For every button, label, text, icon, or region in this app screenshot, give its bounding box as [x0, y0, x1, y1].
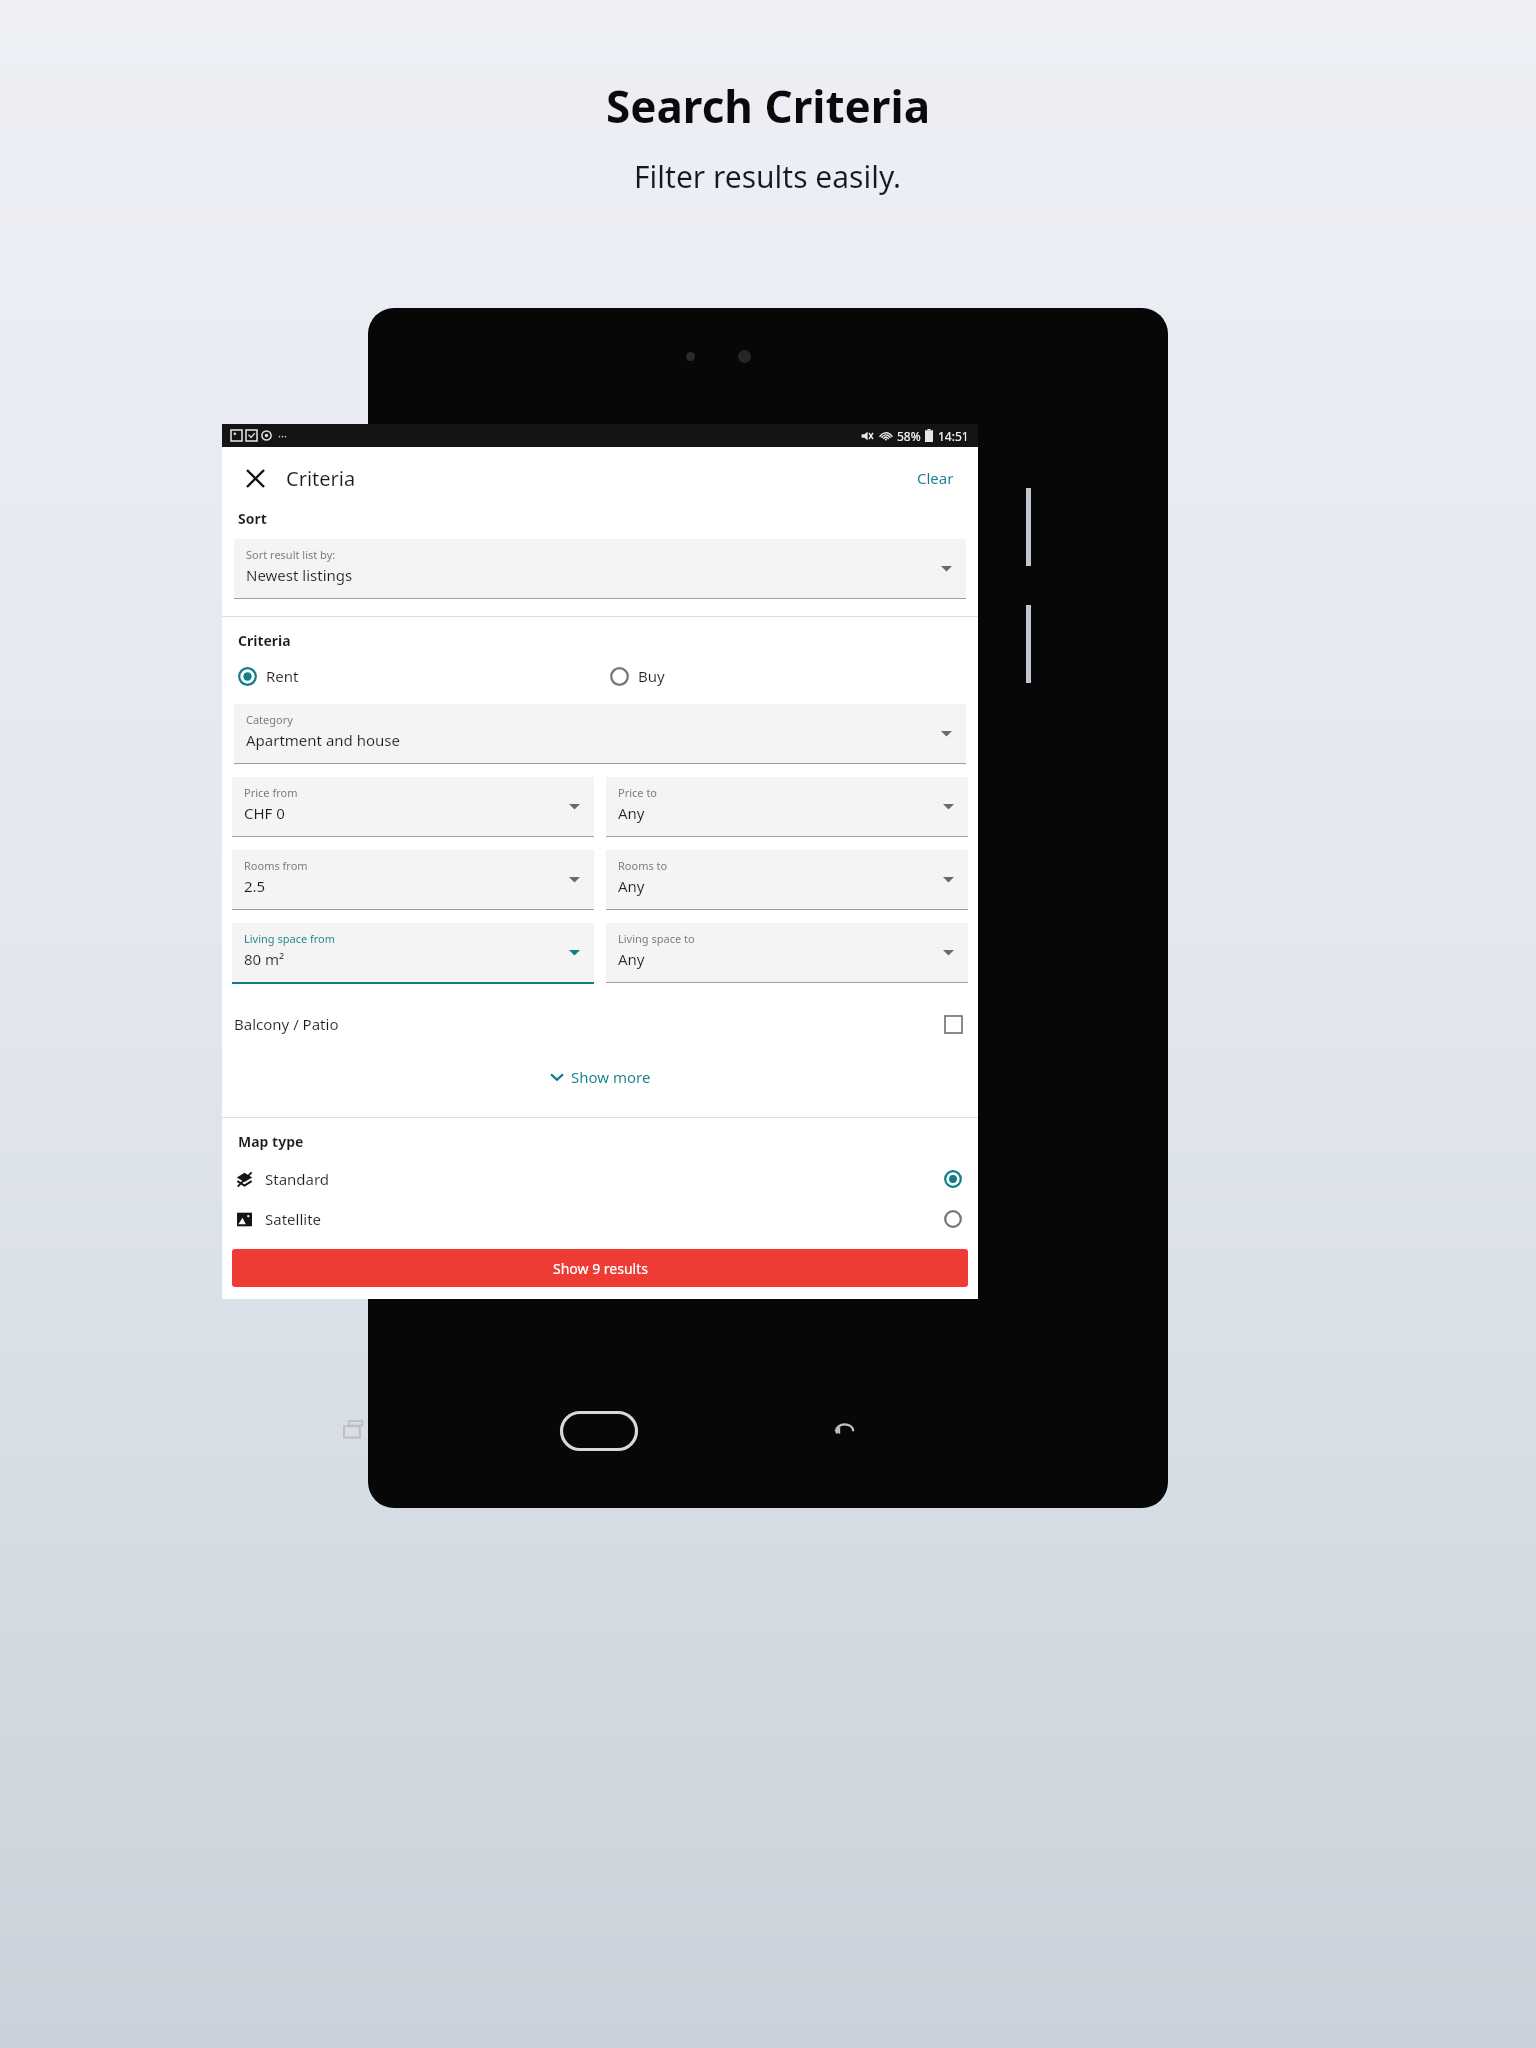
staticText: Filter results easily.: [634, 156, 902, 197]
staticText: Newest listings: [246, 565, 353, 585]
other: Back: [832, 1419, 856, 1443]
staticText: Rent: [266, 666, 299, 686]
staticText: Price to: [618, 785, 658, 800]
staticText: Sort: [238, 509, 267, 528]
staticText: 2.5: [244, 876, 266, 896]
other: Home: [560, 1411, 638, 1451]
staticText: Map type: [238, 1132, 304, 1151]
staticText: CHF 0: [244, 803, 285, 823]
staticText: Show more: [571, 1067, 651, 1087]
button[interactable]: Price from: [232, 777, 594, 837]
staticText: Balcony / Patio: [234, 1014, 339, 1034]
staticText: Standard: [265, 1169, 330, 1189]
button[interactable]: Rooms from: [232, 850, 594, 910]
button[interactable]: Satellite: [232, 1199, 968, 1239]
staticText: Category: [246, 712, 293, 727]
staticText: Criteria: [238, 631, 291, 650]
staticText: 58%: [897, 428, 921, 444]
staticText: Living space to: [618, 931, 695, 946]
button[interactable]: Living space from: [232, 923, 594, 984]
button[interactable]: Clear: [911, 462, 960, 494]
staticText: Rooms to: [618, 858, 668, 873]
staticText: 14:51: [938, 428, 969, 444]
staticText: Sort result list by:: [246, 547, 336, 562]
staticText: Price from: [244, 785, 298, 800]
button[interactable]: Category: [234, 704, 966, 764]
button[interactable]: Show more: [232, 1061, 968, 1093]
staticText: Any: [618, 803, 645, 823]
staticText: Living space from: [244, 931, 336, 946]
staticText: Any: [618, 876, 645, 896]
button[interactable]: Standard: [232, 1159, 968, 1199]
staticText: Any: [618, 949, 645, 969]
other: Recents: [344, 1420, 366, 1442]
staticText: ···: [278, 428, 287, 443]
staticText: Apartment and house: [246, 730, 400, 750]
staticText: Clear: [917, 468, 954, 488]
staticText: 80 m²: [244, 949, 285, 969]
button[interactable]: Sort result list by:: [234, 539, 966, 599]
staticText: Search Criteria: [606, 76, 931, 136]
button[interactable]: Balcony / Patio: [232, 1002, 968, 1046]
button[interactable]: Rooms to: [606, 850, 968, 910]
button[interactable]: Close: [238, 461, 272, 495]
staticText: Criteria: [286, 465, 356, 492]
button[interactable]: Buy: [600, 662, 968, 690]
button[interactable]: Rent: [232, 662, 600, 690]
button[interactable]: Living space to: [606, 923, 968, 983]
staticText: Buy: [638, 666, 665, 686]
button[interactable]: Price to: [606, 777, 968, 837]
staticText: Show 9 results: [553, 1259, 648, 1278]
staticText: Satellite: [265, 1209, 322, 1229]
button[interactable]: Show 9 results: [232, 1249, 968, 1287]
staticText: Rooms from: [244, 858, 308, 873]
